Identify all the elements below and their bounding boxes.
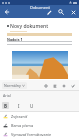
- staticText: Barva písma: [11, 123, 34, 128]
- staticText: I: [18, 103, 20, 109]
- button[interactable]: Back: [0, 5, 13, 18]
- button[interactable]: Text format: [41, 81, 50, 90]
- button[interactable]: Vymazať formátovanie: [0, 130, 79, 139]
- staticText: Zvýrazniť: [11, 114, 28, 119]
- button[interactable]: B: [2, 102, 9, 109]
- staticText: Arial: [3, 93, 11, 98]
- staticText: Vymazať formátovanie: [11, 132, 52, 137]
- button[interactable]: More options: [67, 6, 79, 18]
- staticText: Normálny: [4, 83, 21, 88]
- staticText: U: [30, 103, 34, 109]
- button[interactable]: I: [15, 102, 22, 109]
- button[interactable]: Paragraph: [50, 81, 59, 90]
- button[interactable]: Insert: [59, 81, 68, 90]
- staticText: Nadpis 1: [7, 37, 23, 42]
- staticText: Novy dokument: [10, 23, 49, 30]
- button[interactable]: Done: [68, 81, 77, 90]
- staticText: B: [4, 103, 7, 109]
- staticText: Dokument: [30, 5, 50, 10]
- button[interactable]: Arial: [2, 93, 12, 98]
- button[interactable]: Normálny: [2, 82, 27, 89]
- button[interactable]: Barva písma: [0, 121, 79, 130]
- button[interactable]: Edit: [43, 6, 55, 18]
- button[interactable]: U: [28, 102, 35, 109]
- button[interactable]: Zvýrazniť: [0, 112, 79, 121]
- button[interactable]: Search: [55, 6, 67, 18]
